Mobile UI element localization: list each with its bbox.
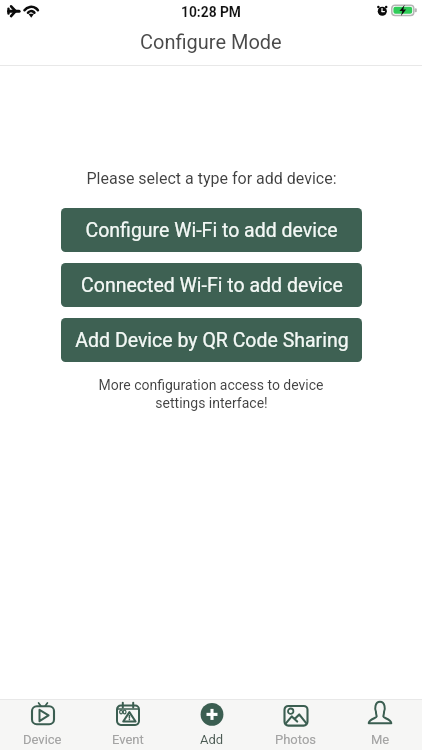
staticText: Photos [275, 732, 317, 747]
staticText: Add [200, 732, 224, 747]
button[interactable]: Event [85, 700, 170, 750]
staticText: Device [23, 732, 62, 747]
staticText: Event [112, 732, 144, 747]
staticText: 10:28 PM [181, 4, 241, 20]
staticText: Me [371, 732, 390, 747]
staticText: More configuration access to device [98, 377, 324, 393]
button[interactable]: Connected Wi-Fi to add device [61, 263, 362, 307]
button[interactable]: Photos [254, 700, 338, 750]
staticText: Configure Wi-Fi to add device [85, 219, 338, 242]
staticText: settings interface! [155, 395, 268, 411]
button[interactable]: Add Device by QR Code Sharing [61, 318, 362, 362]
button[interactable]: Configure Wi-Fi to add device [61, 208, 362, 252]
staticText: Connected Wi-Fi to add device [81, 274, 343, 297]
button[interactable]: Me [338, 700, 422, 750]
staticText: Configure Mode [140, 30, 282, 53]
button[interactable]: Device [0, 700, 85, 750]
staticText: Add Device by QR Code Sharing [75, 329, 349, 352]
staticText: Please select a type for add device: [86, 169, 337, 188]
button[interactable]: Add [170, 700, 254, 750]
